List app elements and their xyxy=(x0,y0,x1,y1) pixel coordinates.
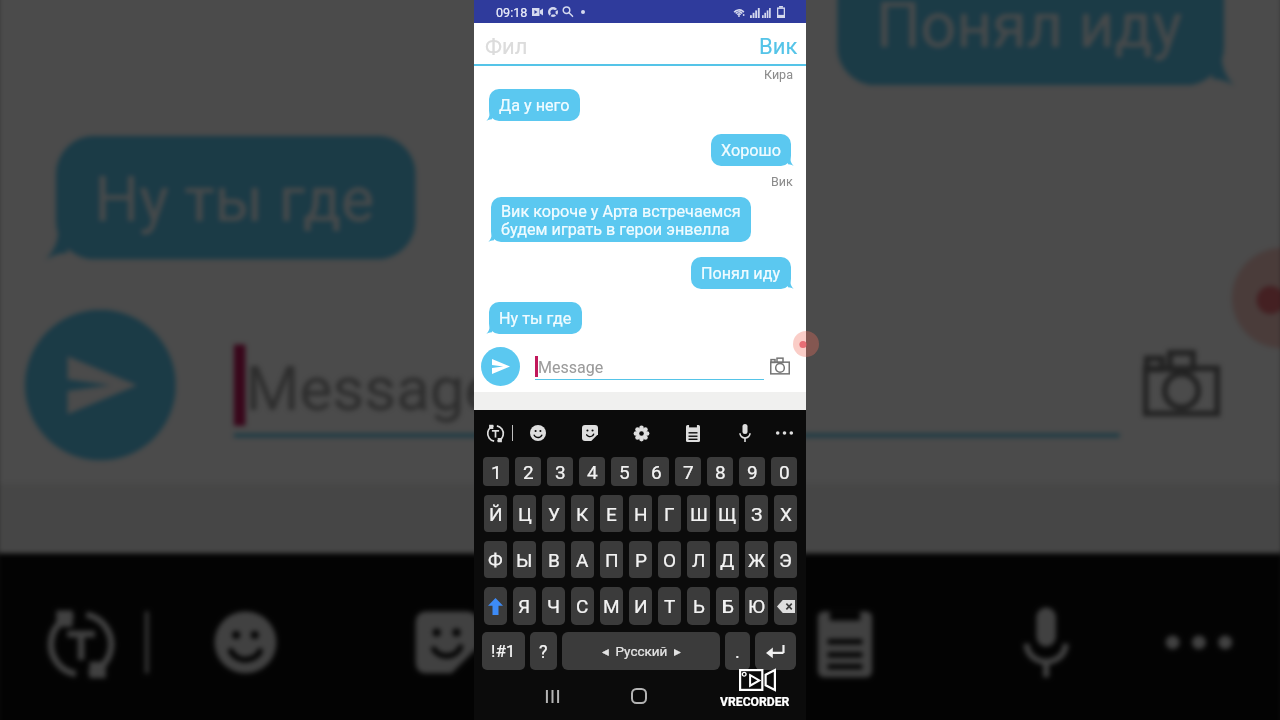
button[interactable]: Ну ты где xyxy=(56,136,416,259)
button[interactable]: Ш xyxy=(687,495,710,532)
button[interactable]: 8 xyxy=(707,457,733,486)
button[interactable]: О xyxy=(658,541,681,578)
button[interactable]: А xyxy=(571,541,594,578)
staticText: Т xyxy=(664,595,676,617)
button[interactable]: Ь xyxy=(687,587,710,625)
button[interactable]: Ч xyxy=(542,587,565,625)
staticText: 3 xyxy=(555,461,566,483)
button[interactable]: Shift xyxy=(484,587,507,625)
button[interactable]: 0 xyxy=(771,457,797,486)
staticText: VRECORDER xyxy=(720,695,790,709)
button[interactable]: Б xyxy=(716,587,739,625)
button[interactable]: К xyxy=(571,495,594,532)
button[interactable]: Ну ты где xyxy=(489,302,582,334)
button[interactable]: Ц xyxy=(513,495,536,532)
button[interactable]: Voice input xyxy=(733,421,757,445)
staticText: А xyxy=(576,549,589,571)
staticText: П xyxy=(605,549,619,571)
button[interactable]: Camera xyxy=(1143,352,1220,414)
button[interactable]: Да у него xyxy=(489,89,580,121)
button[interactable]: ◂ Русский ▸ xyxy=(562,632,720,670)
button[interactable]: 6 xyxy=(643,457,669,486)
button[interactable]: . xyxy=(725,632,750,670)
staticText: Вик xyxy=(759,34,798,60)
button[interactable]: Ж xyxy=(745,541,768,578)
button[interactable]: Й xyxy=(484,495,507,532)
button[interactable]: Voice input xyxy=(1000,596,1092,689)
staticText: Ну ты где xyxy=(95,163,377,236)
button[interactable]: ? xyxy=(530,632,557,670)
button[interactable]: Send xyxy=(25,310,176,461)
button[interactable]: Х xyxy=(774,495,797,532)
button[interactable]: З xyxy=(745,495,768,532)
staticText: 5 xyxy=(619,461,630,483)
button[interactable]: Ю xyxy=(745,587,768,625)
button[interactable]: М xyxy=(600,587,623,625)
button[interactable]: Понял иду xyxy=(691,257,791,289)
button[interactable]: Home xyxy=(621,678,657,714)
button[interactable]: Stickers xyxy=(400,596,493,689)
staticText: Да у него xyxy=(499,96,570,115)
button[interactable]: В xyxy=(542,541,565,578)
button[interactable]: Я xyxy=(513,587,536,625)
button[interactable]: Ф xyxy=(484,541,507,578)
staticText: Хорошо xyxy=(721,141,781,160)
button[interactable]: Emoji xyxy=(199,596,292,689)
button[interactable]: Е xyxy=(600,495,623,532)
button[interactable]: Clipboard xyxy=(681,421,705,445)
staticText: Ч xyxy=(547,595,561,617)
button[interactable]: Щ xyxy=(716,495,739,532)
button[interactable]: 4 xyxy=(579,457,605,486)
button[interactable]: 7 xyxy=(675,457,701,486)
button[interactable]: 2 xyxy=(515,457,541,486)
button[interactable]: Ы xyxy=(513,541,536,578)
button[interactable]: Settings xyxy=(597,596,690,689)
staticText: Ш xyxy=(690,503,708,525)
button[interactable]: More options xyxy=(1151,596,1243,689)
button[interactable]: Н xyxy=(629,495,652,532)
button[interactable]: С xyxy=(571,587,594,625)
button[interactable]: Д xyxy=(716,541,739,578)
button[interactable]: И xyxy=(629,587,652,625)
button[interactable]: Хорошо xyxy=(711,134,791,166)
button[interactable]: Г xyxy=(658,495,681,532)
staticText: 7 xyxy=(683,461,694,483)
staticText: Понял иду xyxy=(876,0,1185,62)
staticText: Ь xyxy=(693,595,705,617)
button[interactable]: 3 xyxy=(547,457,573,486)
button[interactable]: Emoji xyxy=(526,421,550,445)
button[interactable]: П xyxy=(600,541,623,578)
button[interactable]: Л xyxy=(687,541,710,578)
button[interactable]: 9 xyxy=(739,457,765,486)
button[interactable]: Settings xyxy=(629,421,653,445)
button[interactable]: Вик короче у Арта встречаемся будем игра… xyxy=(491,197,751,242)
button[interactable]: Send xyxy=(481,347,520,386)
button[interactable]: Clipboard xyxy=(799,596,891,689)
button[interactable]: Т xyxy=(658,587,681,625)
staticText: Х xyxy=(780,503,792,525)
button[interactable]: Stickers xyxy=(578,421,602,445)
staticText: ◂ Русский ▸ xyxy=(602,643,681,659)
staticText: 4 xyxy=(587,461,598,483)
staticText: 1 xyxy=(491,461,502,483)
button[interactable]: У xyxy=(542,495,565,532)
button[interactable]: Camera xyxy=(770,358,790,374)
staticText: З xyxy=(751,503,763,525)
staticText: Р xyxy=(635,549,647,571)
button[interactable]: Э xyxy=(774,541,797,578)
button[interactable]: 5 xyxy=(611,457,637,486)
button[interactable]: Translate xyxy=(33,596,125,689)
button[interactable]: More options xyxy=(772,421,796,445)
staticText: Я xyxy=(518,595,531,617)
button[interactable]: Backspace xyxy=(774,587,797,625)
staticText: 0 xyxy=(779,461,790,483)
button[interactable]: Р xyxy=(629,541,652,578)
button[interactable]: Recents xyxy=(534,678,570,714)
button[interactable]: Понял иду xyxy=(837,0,1224,85)
button[interactable]: Translate xyxy=(483,421,507,445)
button[interactable]: Enter xyxy=(755,632,796,670)
button[interactable]: 1 xyxy=(483,457,509,486)
staticText: !#1 xyxy=(491,641,516,661)
button[interactable]: !#1 xyxy=(482,632,525,670)
staticText: 6 xyxy=(651,461,662,483)
